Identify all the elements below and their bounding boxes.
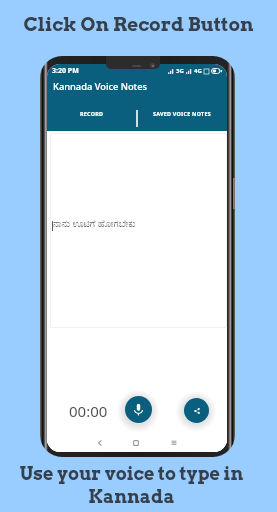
button[interactable]: Back [94,437,106,449]
staticText: Click On Record Button [0,13,277,36]
staticText: 3G [176,67,184,75]
button[interactable]: Home [130,437,142,449]
staticText: Use your voice to type in Kannada [0,463,270,508]
button[interactable]: Record [125,396,152,423]
staticText: Kannada Voice Notes [53,80,148,93]
button[interactable]: SAVED VOICE NOTES [137,101,227,131]
staticText: 4G [194,67,202,75]
staticText: 00:00 [69,401,108,421]
staticText: 3:20 PM [52,66,79,76]
button[interactable]: RECORD [47,101,137,131]
staticText: SAVED VOICE NOTES [153,110,211,117]
staticText: RECORD [80,110,104,117]
staticText: ನಾನು ಊಟಿಗೆ ಹೋಗಬೇಕು [53,217,136,230]
button[interactable]: Recent apps [168,437,180,449]
button[interactable]: Share [184,398,209,423]
